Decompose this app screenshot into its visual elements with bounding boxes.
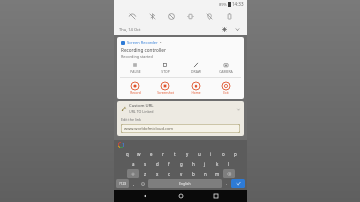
button[interactable]: .: [223, 179, 230, 188]
button[interactable]: o: [217, 149, 229, 158]
staticText: q: [126, 151, 129, 157]
button[interactable]: y: [181, 149, 193, 158]
button[interactable]: i: [205, 149, 217, 158]
button[interactable]: ?123: [116, 179, 129, 188]
button[interactable]: PAUSE: [120, 61, 150, 75]
button[interactable]: v: [175, 169, 187, 178]
button[interactable]: d: [151, 159, 163, 168]
button[interactable]: Do not disturb: [164, 9, 178, 23]
staticText: l: [228, 161, 230, 167]
staticText: u: [198, 151, 201, 157]
staticText: ?123: [119, 181, 127, 186]
staticText: s: [144, 161, 147, 167]
button[interactable]: Collapse: [235, 106, 241, 112]
button[interactable]: Custom URL: [117, 101, 244, 136]
staticText: Exit: [223, 91, 229, 95]
staticText: n: [204, 171, 207, 177]
staticText: www.worldofmicloud.com: [124, 126, 174, 131]
button[interactable]: Wi-Fi: [125, 9, 139, 23]
staticText: m: [215, 171, 220, 177]
button[interactable]: u: [193, 149, 205, 158]
button[interactable]: x: [151, 169, 163, 178]
staticText: h: [192, 161, 195, 167]
button[interactable]: a: [127, 159, 139, 168]
button[interactable]: Shift: [127, 169, 139, 178]
button[interactable]: n: [199, 169, 211, 178]
button[interactable]: g: [175, 159, 187, 168]
staticText: 89%: [219, 2, 227, 7]
button[interactable]: Battery saver: [222, 9, 236, 23]
button[interactable]: Bluetooth: [145, 9, 159, 23]
button[interactable]: Exit: [211, 81, 241, 96]
button[interactable]: Record: [120, 81, 150, 96]
staticText: r: [162, 151, 164, 157]
button[interactable]: e: [145, 149, 157, 158]
button[interactable]: q: [121, 149, 133, 158]
button[interactable]: c: [163, 169, 175, 178]
staticText: Home: [191, 91, 201, 95]
staticText: DRAW: [191, 69, 201, 74]
staticText: .: [226, 181, 228, 186]
staticText: Custom URL: [129, 103, 154, 109]
button[interactable]: s: [139, 159, 151, 168]
staticText: Thu, 14 Oct: [119, 27, 141, 32]
button[interactable]: Settings: [220, 25, 229, 34]
button[interactable]: ,: [130, 179, 138, 188]
staticText: g: [180, 161, 183, 167]
staticText: PAUSE: [130, 69, 141, 74]
button[interactable]: w: [133, 149, 145, 158]
button[interactable]: k: [211, 159, 223, 168]
staticText: w: [137, 151, 141, 157]
button[interactable]: DRAW: [181, 61, 211, 75]
button[interactable]: p: [229, 149, 241, 158]
staticText: x: [156, 171, 159, 177]
staticText: Record: [130, 91, 141, 95]
button[interactable]: j: [199, 159, 211, 168]
staticText: Screen Recorder: [127, 40, 158, 45]
staticText: y: [186, 151, 189, 157]
staticText: o: [222, 151, 225, 157]
staticText: Recording controller: [121, 47, 166, 53]
staticText: j: [204, 161, 206, 167]
button[interactable]: z: [139, 169, 151, 178]
staticText: a: [132, 161, 135, 167]
button[interactable]: Emoji: [139, 179, 147, 188]
button[interactable]: b: [187, 169, 199, 178]
button[interactable]: l: [223, 159, 235, 168]
staticText: v: [180, 171, 183, 177]
staticText: •: [160, 40, 162, 45]
button[interactable]: Screenshot: [150, 81, 180, 96]
button[interactable]: Google search: [118, 142, 124, 148]
button[interactable]: www.worldofmicloud.com: [121, 124, 240, 133]
button[interactable]: STOP: [150, 61, 180, 75]
staticText: b: [192, 171, 195, 177]
button[interactable]: h: [187, 159, 199, 168]
staticText: p: [234, 151, 237, 157]
button[interactable]: Home: [181, 81, 211, 96]
staticText: 14:33: [232, 1, 244, 7]
button[interactable]: Backspace: [223, 169, 235, 178]
button[interactable]: f: [163, 159, 175, 168]
staticText: STOP: [161, 69, 170, 74]
button[interactable]: r: [157, 149, 169, 158]
button[interactable]: CAMERA: [211, 61, 241, 75]
staticText: CAMERA: [219, 69, 233, 74]
staticText: t: [174, 151, 176, 157]
staticText: ,: [133, 181, 135, 186]
staticText: e: [150, 151, 153, 157]
button[interactable]: Recents: [211, 191, 221, 201]
button[interactable]: Enter: [231, 179, 245, 188]
staticText: f: [168, 161, 170, 167]
button[interactable]: Auto rotate: [183, 9, 197, 23]
staticText: z: [144, 171, 147, 177]
button[interactable]: t: [169, 149, 181, 158]
button[interactable]: English: [148, 179, 222, 188]
button[interactable]: Location: [202, 9, 216, 23]
button[interactable]: Expand: [233, 25, 242, 34]
staticText: Screenshot: [157, 91, 174, 95]
button[interactable]: m: [211, 169, 223, 178]
button[interactable]: Back: [140, 191, 150, 201]
staticText: d: [156, 161, 159, 167]
staticText: Recording started: [121, 54, 153, 59]
button[interactable]: Home: [176, 191, 186, 201]
